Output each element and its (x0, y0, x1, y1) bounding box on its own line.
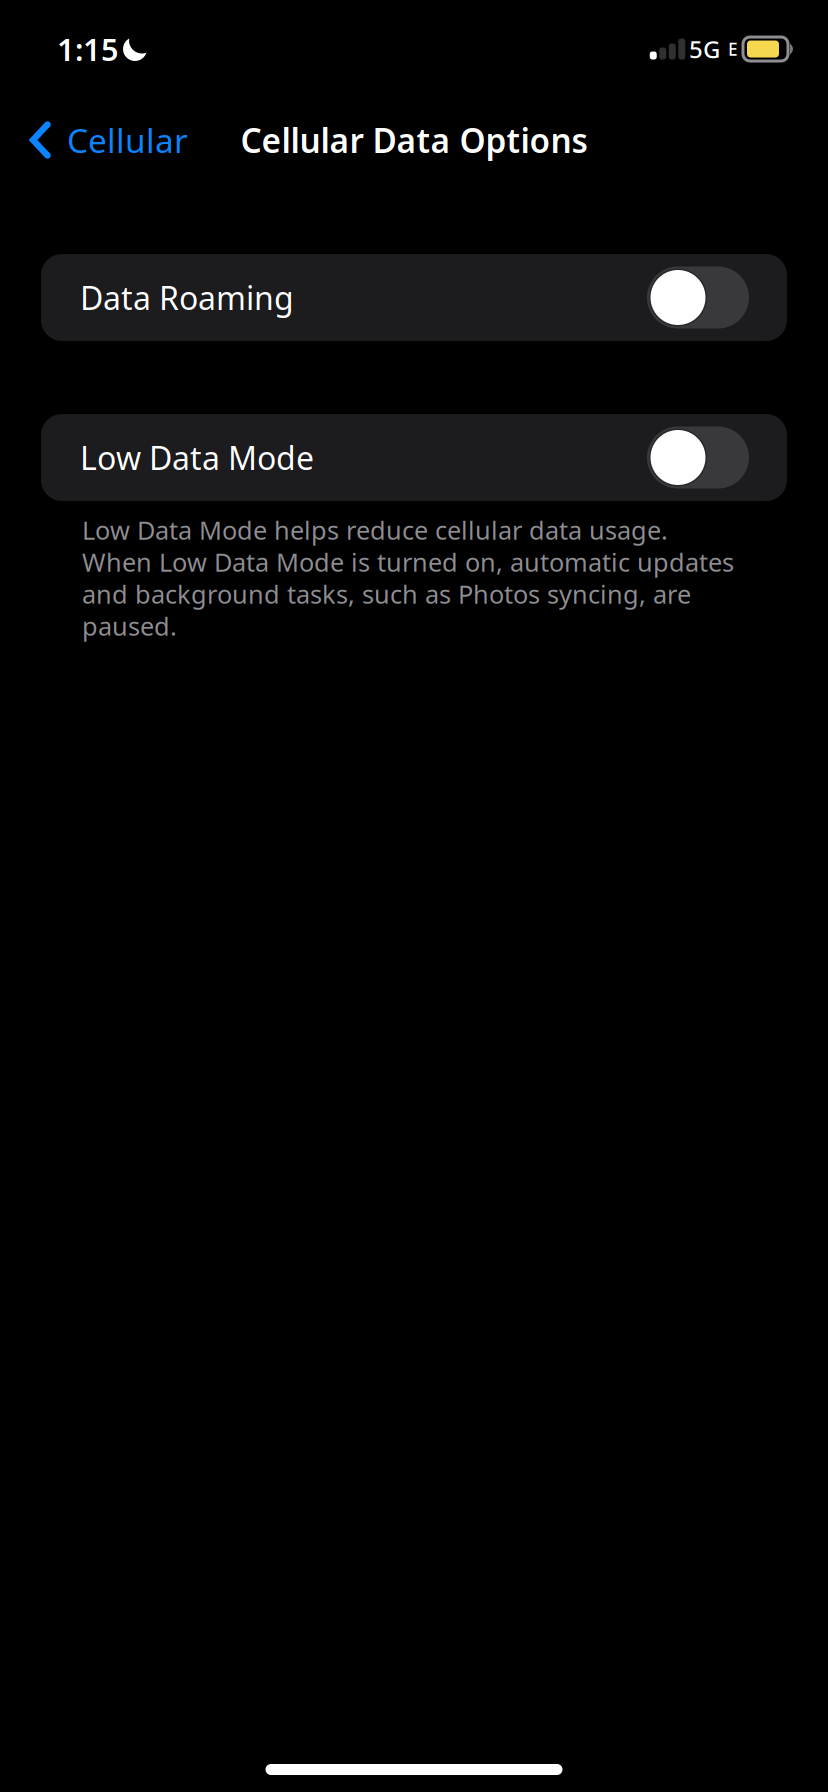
staticText: Data Roaming (80, 276, 294, 319)
staticText: paused. (82, 609, 177, 643)
button[interactable]: Off (41, 254, 787, 341)
button[interactable]: Back to Cellular (21, 104, 196, 176)
staticText: Low Data Mode (80, 436, 314, 479)
button[interactable]: Off (41, 414, 787, 501)
staticText: Cellular (67, 118, 188, 162)
staticText: 1:15 (57, 29, 119, 69)
staticText: When Low Data Mode is turned on, automat… (82, 545, 734, 579)
staticText: Low Data Mode helps reduce cellular data… (82, 513, 668, 547)
staticText: E (728, 37, 738, 60)
staticText: Cellular Data Options (240, 118, 587, 162)
staticText: and background tasks, such as Photos syn… (82, 577, 691, 611)
staticText: 5G (689, 33, 720, 65)
